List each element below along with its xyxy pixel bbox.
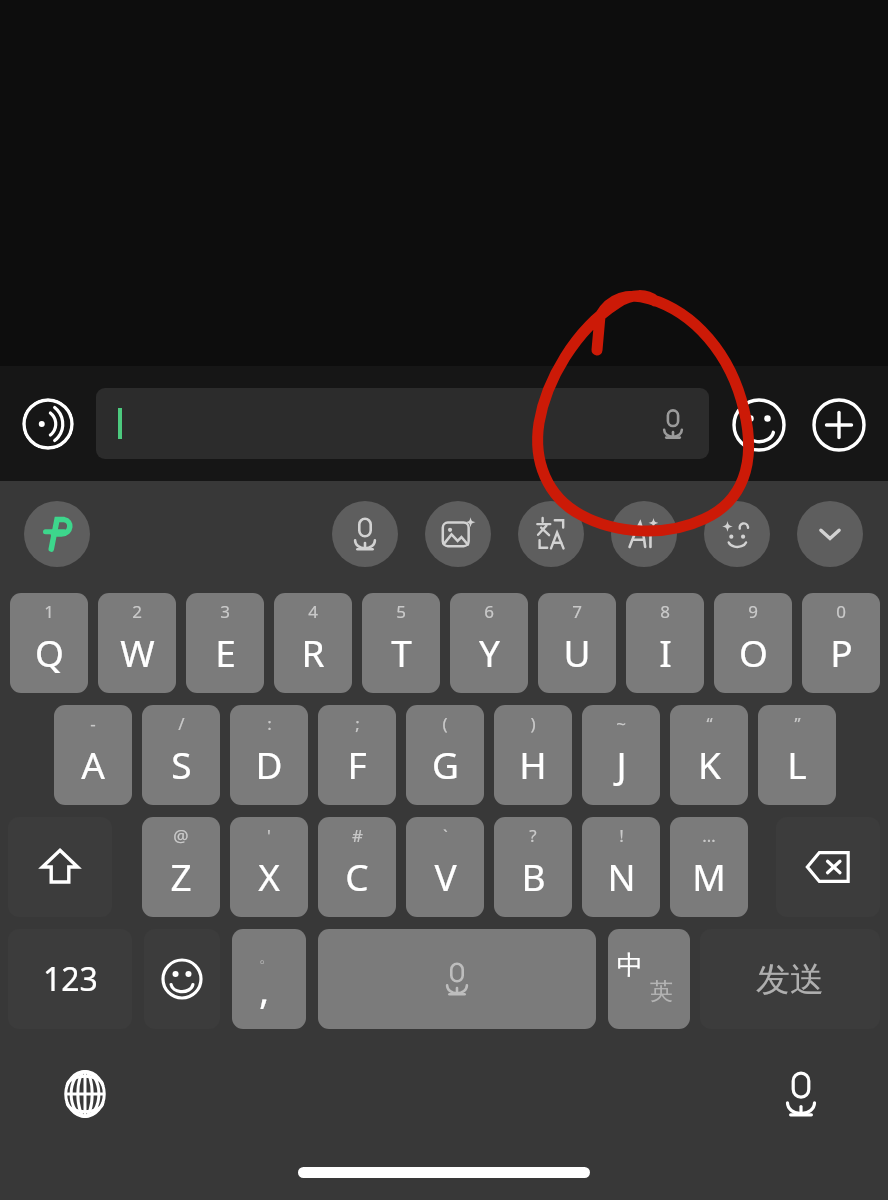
staticText: L <box>787 739 807 789</box>
staticText: V <box>434 851 457 901</box>
button[interactable]: - <box>54 705 132 805</box>
button[interactable]: ! <box>582 817 660 917</box>
staticText: 4 <box>308 600 318 623</box>
button[interactable]: Keyboard brand <box>24 501 90 567</box>
button[interactable]: Dictate <box>651 402 695 446</box>
button[interactable]: 。 <box>232 929 306 1029</box>
button[interactable]: Space <box>318 929 596 1029</box>
staticText: 2 <box>132 600 142 623</box>
staticText: S <box>171 739 192 789</box>
button[interactable]: : <box>230 705 308 805</box>
button[interactable]: 9 <box>714 593 792 693</box>
button[interactable]: Voice message <box>22 398 74 450</box>
staticText: ! <box>619 824 624 847</box>
staticText: 123 <box>43 957 98 1001</box>
button[interactable]: ; <box>318 705 396 805</box>
staticText: 英 <box>650 977 673 1006</box>
staticText: 中 <box>617 949 643 982</box>
staticText: 9 <box>748 600 758 623</box>
button[interactable]: 6 <box>450 593 528 693</box>
staticText: 8 <box>660 600 670 623</box>
button[interactable]: # <box>318 817 396 917</box>
staticText: D <box>255 739 283 789</box>
staticText: U <box>563 627 591 677</box>
button[interactable]: 5 <box>362 593 440 693</box>
button[interactable]: @ <box>142 817 220 917</box>
staticText: , <box>259 963 270 1015</box>
button[interactable]: AI writing <box>611 501 677 567</box>
button[interactable]: 发送 <box>700 929 880 1029</box>
button[interactable]: 123 <box>8 929 132 1029</box>
staticText: K <box>698 739 721 789</box>
staticText: ; <box>355 712 360 735</box>
staticText: C <box>345 851 369 901</box>
button[interactable]: Dictate <box>96 388 709 459</box>
button[interactable]: 7 <box>538 593 616 693</box>
button[interactable]: 2 <box>98 593 176 693</box>
staticText: 5 <box>396 600 406 623</box>
staticText: / <box>178 712 185 735</box>
staticText: 发送 <box>756 958 824 1001</box>
button[interactable]: ) <box>494 705 572 805</box>
staticText: 7 <box>572 600 582 623</box>
staticText: X <box>258 851 280 901</box>
staticText: O <box>739 627 768 677</box>
staticText: J <box>616 739 627 789</box>
staticText: 6 <box>484 600 494 623</box>
staticText: R <box>301 627 325 677</box>
staticText: “ <box>706 712 713 735</box>
button[interactable]: Emoji <box>732 398 786 452</box>
button[interactable]: Image <box>425 501 491 567</box>
button[interactable]: “ <box>670 705 748 805</box>
staticText: A <box>81 739 105 789</box>
button[interactable]: Backspace <box>776 817 880 917</box>
button[interactable]: Translate <box>518 501 584 567</box>
staticText: 。 <box>259 947 275 967</box>
staticText: F <box>347 739 367 789</box>
button[interactable]: 0 <box>802 593 880 693</box>
staticText: B <box>521 851 546 901</box>
button[interactable]: Avatar <box>704 501 770 567</box>
button[interactable]: ~ <box>582 705 660 805</box>
button[interactable]: Chinese English toggle <box>608 929 690 1029</box>
staticText: I <box>659 627 672 677</box>
staticText: 0 <box>836 600 846 623</box>
button[interactable]: 4 <box>274 593 352 693</box>
button[interactable]: Voice typing <box>768 1061 834 1127</box>
button[interactable]: Emoji keyboard <box>144 929 220 1029</box>
staticText: T <box>391 627 412 677</box>
button[interactable]: ? <box>494 817 572 917</box>
staticText: P <box>830 627 853 677</box>
button[interactable]: Collapse <box>797 501 863 567</box>
staticText: # <box>352 824 363 847</box>
staticText: ) <box>530 712 536 735</box>
staticText: ” <box>794 712 801 735</box>
button[interactable]: … <box>670 817 748 917</box>
staticText: ~ <box>616 712 626 735</box>
staticText: - <box>90 712 96 735</box>
button[interactable]: 3 <box>186 593 264 693</box>
staticText: Y <box>479 627 500 677</box>
staticText: … <box>702 824 716 847</box>
staticText: N <box>607 851 636 901</box>
button[interactable]: / <box>142 705 220 805</box>
staticText: : <box>267 712 272 735</box>
button[interactable]: ' <box>230 817 308 917</box>
button[interactable]: ` <box>406 817 484 917</box>
staticText: @ <box>173 824 189 847</box>
button[interactable]: Shift <box>8 817 112 917</box>
staticText: Z <box>170 851 192 901</box>
button[interactable]: ( <box>406 705 484 805</box>
button[interactable]: ” <box>758 705 836 805</box>
button[interactable]: Voice input <box>332 501 398 567</box>
staticText: ( <box>442 712 448 735</box>
staticText: H <box>519 739 547 789</box>
staticText: G <box>432 739 459 789</box>
staticText: E <box>215 627 236 677</box>
button[interactable]: 8 <box>626 593 704 693</box>
button[interactable]: More options <box>812 398 866 452</box>
staticText: ' <box>267 824 271 847</box>
button[interactable]: 1 <box>10 593 88 693</box>
button[interactable]: Change keyboard language <box>52 1061 118 1127</box>
staticText: W <box>120 627 155 677</box>
